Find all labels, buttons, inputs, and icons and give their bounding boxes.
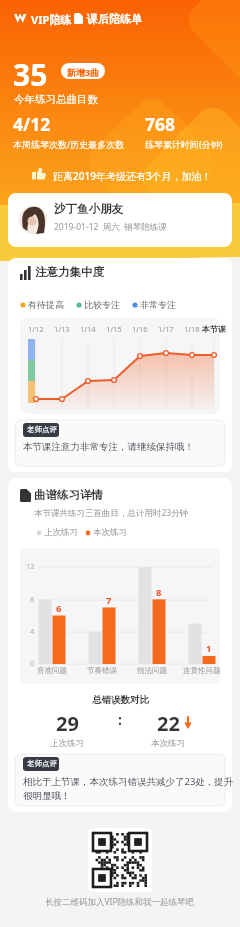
- button[interactable]: [30, 165, 210, 183]
- staticText: 22: [157, 710, 180, 737]
- staticText: 1/18: [184, 324, 200, 334]
- staticText: :: [118, 710, 122, 729]
- staticText: 长按二维码加入VIP陪练和我一起练琴吧: [45, 896, 195, 908]
- button[interactable]: [8, 8, 138, 30]
- staticText: 有待提高: [28, 299, 64, 310]
- staticText: 768: [145, 112, 176, 136]
- button[interactable]: [8, 193, 232, 247]
- staticText: 1/12: [28, 324, 44, 334]
- staticText: 1/17: [158, 324, 174, 334]
- staticText: 29: [56, 710, 79, 737]
- staticText: VIP陪练: [31, 12, 72, 27]
- staticText: 4: [30, 626, 35, 636]
- staticText: 曲谱练习详情: [34, 488, 103, 502]
- staticText: 4/12: [13, 112, 51, 136]
- staticText: 上次练习: [50, 738, 84, 749]
- staticText: 连贯性问题: [183, 666, 221, 675]
- staticText: 1/16: [132, 324, 148, 334]
- staticText: 7: [106, 594, 112, 607]
- staticText: 很明显哦！: [23, 790, 71, 802]
- staticText: 本节课注意力非常专注，请继续保持哦！: [23, 441, 194, 453]
- staticText: 本周练琴次数/历史最多次数: [13, 138, 125, 150]
- staticText: 老师点评: [27, 759, 57, 768]
- staticText: 1: [206, 642, 212, 655]
- staticText: 6: [56, 602, 62, 615]
- staticText: 课后陪练单: [87, 12, 142, 26]
- staticText: 指法问题: [137, 666, 167, 675]
- staticText: 本节课共练习三首曲目，总计用时23分钟: [34, 507, 189, 519]
- staticText: 老师点评: [27, 425, 57, 434]
- staticText: 1/15: [106, 324, 122, 334]
- staticText: 上次练习: [44, 527, 78, 538]
- staticText: 注意力集中度: [35, 265, 104, 279]
- staticText: 总错误数对比: [92, 694, 149, 706]
- staticText: 8: [156, 586, 162, 599]
- staticText: 2019-01-12 周六 钢琴陪练课: [54, 221, 167, 233]
- staticText: 距离2019年考级还有3个月，加油！: [53, 169, 212, 183]
- staticText: 相比于上节课，本次练习错误共减少了23处，提升: [23, 775, 234, 788]
- staticText: 练琴累计时间(分钟): [145, 138, 223, 150]
- staticText: 今年练习总曲目数: [14, 93, 98, 106]
- button[interactable]: [88, 828, 152, 892]
- staticText: 非常专注: [140, 299, 176, 310]
- button[interactable]: [60, 62, 105, 80]
- staticText: 8: [30, 594, 35, 604]
- staticText: 1/13: [54, 324, 70, 334]
- staticText: 本节课: [202, 324, 226, 334]
- staticText: 音准问题: [37, 666, 67, 675]
- staticText: 新增3曲: [67, 66, 100, 78]
- staticText: 0: [30, 658, 35, 668]
- staticText: 节奏错误: [87, 666, 117, 675]
- staticText: 本次练习: [151, 738, 185, 749]
- staticText: 本次练习: [93, 527, 127, 538]
- staticText: 1/14: [80, 324, 96, 334]
- staticText: 35: [13, 54, 48, 95]
- staticText: 12: [26, 561, 35, 571]
- staticText: 沙丁鱼小朋友: [54, 202, 123, 216]
- staticText: 比较专注: [84, 299, 120, 310]
